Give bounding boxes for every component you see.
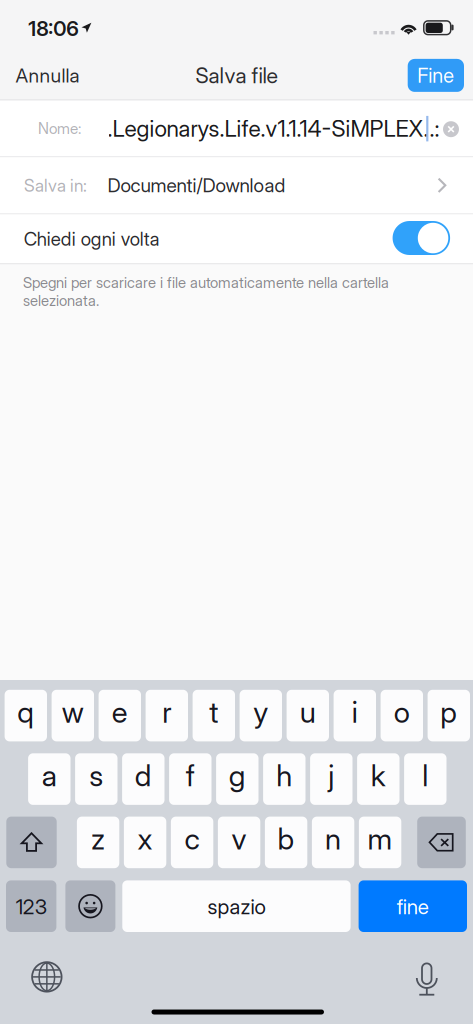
button[interactable]: d xyxy=(122,753,164,805)
staticText: t xyxy=(209,694,218,730)
staticText: b xyxy=(278,821,295,857)
button[interactable]: g xyxy=(216,753,258,805)
button[interactable]: s xyxy=(75,753,117,805)
staticText: d xyxy=(135,758,152,793)
button[interactable]: fine xyxy=(359,880,467,932)
staticText: w xyxy=(62,694,84,730)
button[interactable]: spazio xyxy=(122,880,351,932)
button[interactable]: c xyxy=(171,817,213,868)
button[interactable]: z xyxy=(77,817,119,868)
staticText: z xyxy=(91,821,105,857)
staticText: Fine xyxy=(417,63,454,87)
staticText: k xyxy=(371,758,386,793)
button[interactable]: p xyxy=(428,690,470,741)
button[interactable]: k xyxy=(357,753,399,805)
button[interactable]: m xyxy=(359,817,401,868)
staticText: r xyxy=(162,694,171,730)
staticText: 18:06 xyxy=(28,16,79,41)
staticText: e xyxy=(112,694,128,730)
button[interactable]: Chiedi ogni volta xyxy=(393,221,450,255)
button[interactable]: Dettatura xyxy=(416,960,437,992)
staticText: s xyxy=(89,758,103,793)
button[interactable]: w xyxy=(52,690,94,741)
staticText: Spegni per scaricare i file automaticame… xyxy=(23,273,389,310)
staticText: Nome: xyxy=(38,119,81,138)
button[interactable]: f xyxy=(169,753,211,805)
button[interactable]: n xyxy=(312,817,354,868)
button[interactable]: Annulla xyxy=(15,59,95,92)
staticText: .Legionarys.Life.v1.1.14-SiMPLEX. xyxy=(107,115,428,142)
button[interactable]: v xyxy=(218,817,260,868)
button[interactable]: h xyxy=(263,753,305,805)
staticText: c xyxy=(185,821,200,857)
staticText: u xyxy=(300,694,316,730)
staticText: p xyxy=(440,694,457,730)
staticText: 123 xyxy=(16,894,47,919)
button[interactable]: q xyxy=(5,690,47,741)
button[interactable]: x xyxy=(124,817,166,868)
staticText: Chiedi ogni volta xyxy=(24,228,160,250)
button[interactable]: r xyxy=(146,690,188,741)
button[interactable]: y xyxy=(240,690,282,741)
staticText: a xyxy=(42,758,57,793)
button[interactable]: Cancella xyxy=(417,817,466,868)
button[interactable]: e xyxy=(99,690,141,741)
staticText: f xyxy=(186,758,195,793)
staticText: fine xyxy=(397,894,429,919)
button[interactable]: Cancella testo xyxy=(443,121,459,137)
button[interactable]: u xyxy=(287,690,329,741)
button[interactable]: l xyxy=(404,753,446,805)
button[interactable]: Maiuscole xyxy=(6,817,57,868)
staticText: h xyxy=(276,758,292,793)
staticText: i xyxy=(352,694,358,730)
button[interactable]: Fine xyxy=(408,59,464,92)
button[interactable]: a xyxy=(28,753,70,805)
staticText: x xyxy=(138,821,153,857)
button[interactable]: Cambia tastiera xyxy=(32,962,62,992)
staticText: q xyxy=(17,694,34,730)
staticText: Annulla xyxy=(15,64,79,87)
staticText: n xyxy=(325,821,341,857)
staticText: Salva file xyxy=(195,63,277,88)
staticText: g xyxy=(229,758,246,793)
staticText: y xyxy=(253,694,268,730)
button[interactable]: j xyxy=(310,753,352,805)
staticText: j xyxy=(328,758,334,793)
button[interactable]: o xyxy=(381,690,423,741)
staticText: Documenti/Download xyxy=(107,174,285,197)
staticText: m xyxy=(368,821,393,857)
button[interactable]: i xyxy=(334,690,376,741)
staticText: .: xyxy=(429,115,439,142)
staticText: v xyxy=(232,821,247,857)
button[interactable]: t xyxy=(193,690,235,741)
staticText: spazio xyxy=(207,894,265,919)
staticText: l xyxy=(422,758,428,793)
button[interactable]: 123 xyxy=(6,880,56,932)
staticText: Salva in: xyxy=(24,175,87,196)
button[interactable]: Emoji xyxy=(65,880,115,932)
staticText: o xyxy=(394,694,410,730)
button[interactable]: b xyxy=(265,817,307,868)
